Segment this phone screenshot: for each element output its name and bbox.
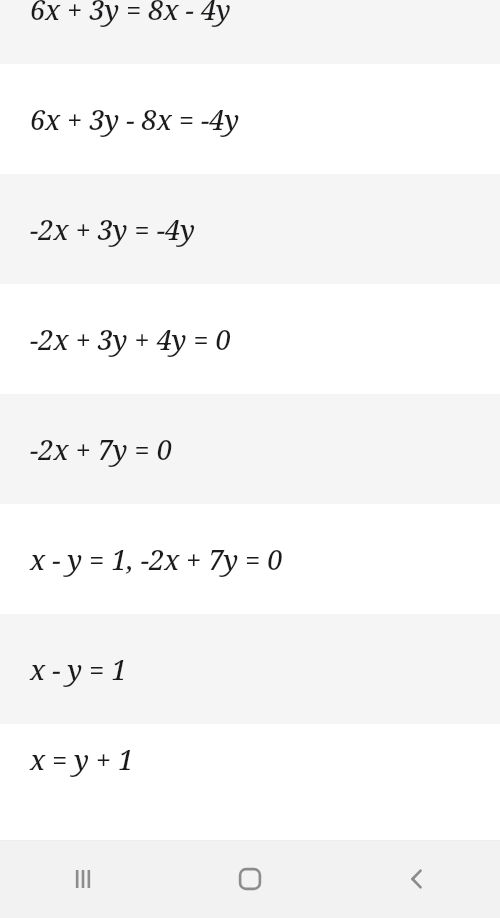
button[interactable]: x − y = 1 — [0, 614, 500, 724]
staticText: 6x + 3y − 8x = −4y — [30, 101, 240, 138]
staticText: x = y + 1 — [30, 741, 134, 778]
staticText: −2x + 3y = −4y — [30, 211, 195, 248]
button[interactable]: Home — [166, 840, 333, 918]
button[interactable]: 6x + 3y − 8x = −4y — [0, 64, 500, 174]
button[interactable]: −2x + 3y + 4y = 0 — [0, 284, 500, 394]
button[interactable]: Recent apps — [0, 840, 166, 918]
button[interactable]: 6x + 3y = 8x − 4y — [0, 0, 500, 64]
staticText: x − y = 1, −2x + 7y = 0 — [30, 541, 283, 578]
button[interactable]: x − y = 1, −2x + 7y = 0 — [0, 504, 500, 614]
button[interactable]: Back — [333, 840, 500, 918]
button[interactable]: x = y + 1 — [0, 724, 500, 794]
staticText: −2x + 3y + 4y = 0 — [30, 321, 231, 358]
staticText: −2x + 7y = 0 — [30, 431, 172, 468]
staticText: 6x + 3y = 8x − 4y — [30, 0, 231, 28]
button[interactable]: −2x + 3y = −4y — [0, 174, 500, 284]
staticText: x − y = 1 — [30, 651, 127, 688]
button[interactable]: −2x + 7y = 0 — [0, 394, 500, 504]
